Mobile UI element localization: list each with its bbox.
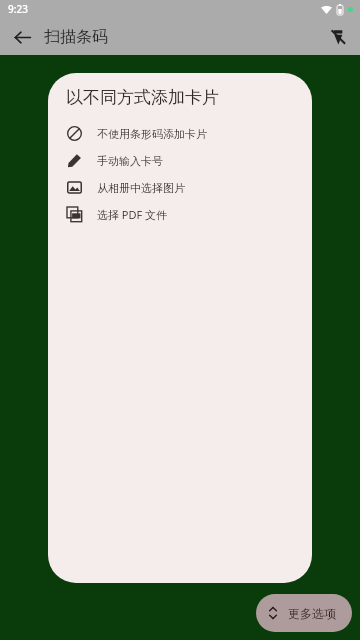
button[interactable]: 选择 PDF 文件 xyxy=(48,201,312,228)
button[interactable]: 不使用条形码添加卡片 xyxy=(48,120,312,147)
button[interactable]: Toggle flash xyxy=(320,19,356,55)
button[interactable]: 从相册中选择图片 xyxy=(48,174,312,201)
button[interactable]: Back xyxy=(4,19,40,55)
staticText: 更多选项 xyxy=(288,606,336,621)
staticText: 不使用条形码添加卡片 xyxy=(97,127,207,141)
staticText: 以不同方式添加卡片 xyxy=(66,87,219,108)
staticText: 扫描条码 xyxy=(44,27,108,47)
staticText: 手动输入卡号 xyxy=(97,154,163,168)
staticText: 从相册中选择图片 xyxy=(97,181,185,195)
staticText: 选择 PDF 文件 xyxy=(97,207,168,222)
button[interactable]: 手动输入卡号 xyxy=(48,147,312,174)
staticText: 9:23 xyxy=(8,2,28,16)
button[interactable]: 更多选项 xyxy=(256,594,352,632)
